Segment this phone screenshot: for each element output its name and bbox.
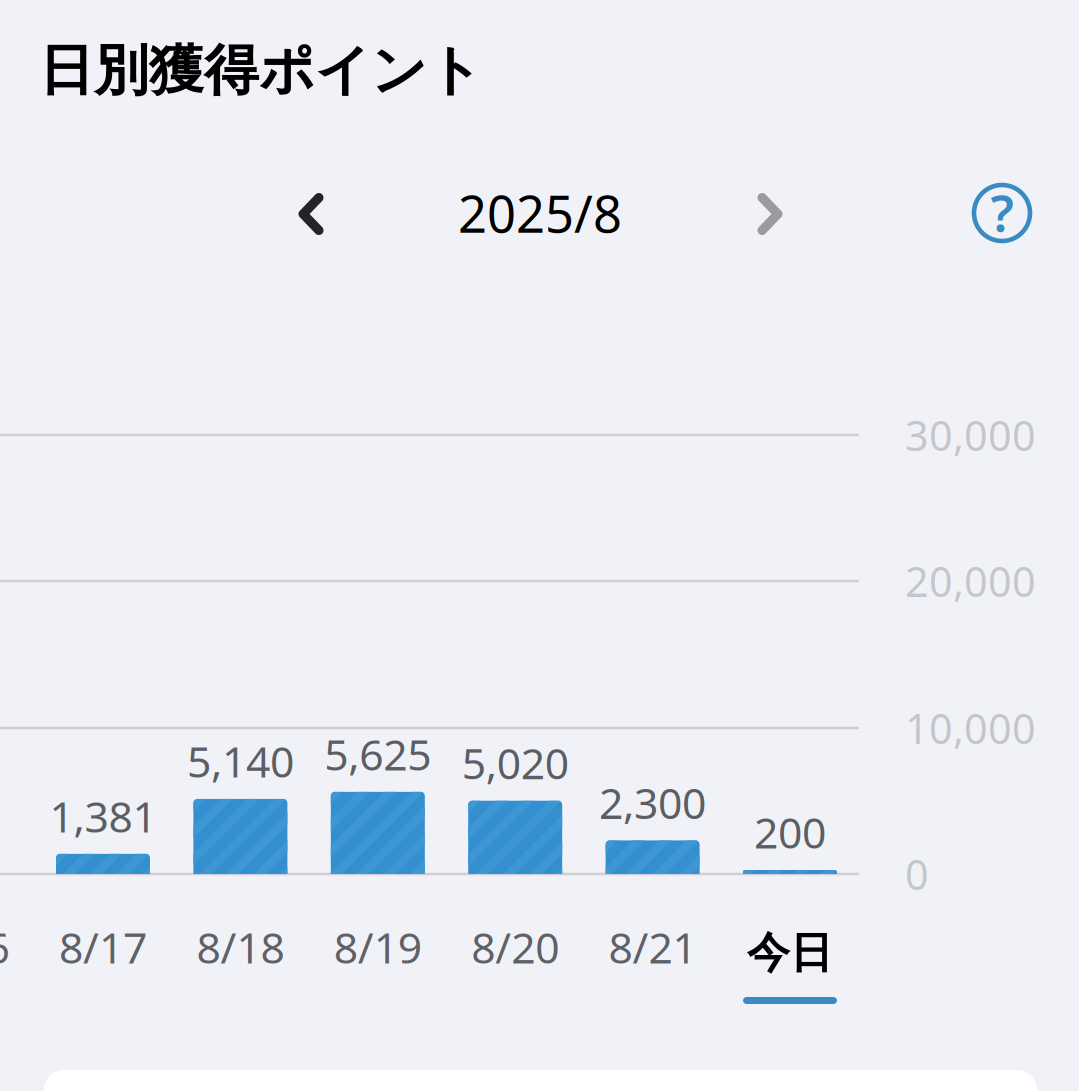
staticText: 8/20: [471, 919, 559, 975]
staticText: 日別獲得ポイント: [39, 37, 483, 104]
staticText: 8/16: [0, 919, 10, 975]
staticText: 5,140: [187, 733, 294, 789]
staticText: 1,381: [49, 787, 156, 844]
staticText: 10,000: [905, 701, 1036, 755]
staticText: 5,625: [324, 725, 431, 782]
staticText: 8/17: [59, 919, 147, 975]
staticText: 2025/8: [458, 179, 622, 247]
staticText: 30,000: [905, 408, 1036, 462]
button[interactable]: ヘルプ: [965, 176, 1039, 250]
staticText: ?: [990, 178, 1013, 246]
staticText: 8/18: [196, 919, 284, 975]
staticText: 今日: [747, 927, 833, 979]
button[interactable]: 前の月: [274, 177, 348, 251]
staticText: 200: [754, 804, 826, 860]
staticText: 2,300: [599, 774, 706, 831]
staticText: 5,020: [462, 734, 569, 791]
button[interactable]: 2025/8: [440, 176, 640, 250]
staticText: 8/21: [609, 919, 697, 975]
staticText: 20,000: [905, 554, 1036, 608]
button[interactable]: 次の月: [733, 177, 807, 251]
staticText: 8/19: [334, 919, 422, 975]
staticText: 0: [905, 847, 929, 901]
